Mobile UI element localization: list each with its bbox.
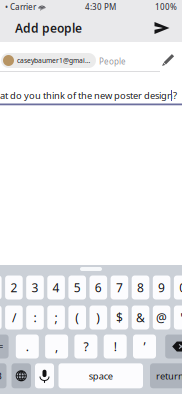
staticText: • Carrier xyxy=(5,2,36,12)
button[interactable]: . xyxy=(16,334,39,358)
button[interactable]: #+= xyxy=(0,334,9,358)
button[interactable]: Delete xyxy=(165,334,182,358)
staticText: 100% xyxy=(155,2,177,12)
button[interactable]: " xyxy=(174,305,182,329)
button[interactable]: ! xyxy=(104,334,127,358)
staticText: $ xyxy=(116,309,123,325)
button[interactable]: Send xyxy=(152,17,172,39)
staticText: return xyxy=(156,370,182,382)
button[interactable]: / xyxy=(5,305,23,329)
staticText: 7 xyxy=(116,279,123,295)
button[interactable]: ’ xyxy=(133,334,156,358)
button[interactable]: Next keyboard xyxy=(11,363,31,388)
staticText: 9 xyxy=(158,279,165,295)
staticText: ( xyxy=(75,309,79,325)
staticText: space xyxy=(89,370,113,382)
button[interactable]: 8 xyxy=(132,275,149,299)
staticText: 0 xyxy=(179,279,182,295)
button[interactable]: $ xyxy=(111,305,128,329)
staticText: caseybaumer1@gmai… xyxy=(17,56,90,65)
button[interactable]: @ xyxy=(153,305,170,329)
staticText: 4:30 PM xyxy=(85,2,116,12)
staticText: #+= xyxy=(0,340,3,353)
staticText: @ xyxy=(156,309,167,325)
staticText: 3 xyxy=(31,279,38,295)
button[interactable]: 6 xyxy=(89,275,107,299)
staticText: / xyxy=(12,309,16,325)
staticText: Add people xyxy=(15,20,82,36)
staticText: 123 xyxy=(0,370,1,382)
button[interactable]: , xyxy=(45,334,68,358)
staticText: 4 xyxy=(53,279,60,295)
staticText: ) xyxy=(96,309,100,325)
button[interactable]: ( xyxy=(68,305,86,329)
button[interactable]: 3 xyxy=(26,275,44,299)
button[interactable]: & xyxy=(132,305,149,329)
staticText: 2 xyxy=(10,279,17,295)
button[interactable]: 1 xyxy=(0,275,2,299)
staticText: ’ xyxy=(143,338,145,354)
staticText: . xyxy=(26,338,29,354)
staticText: 8 xyxy=(137,279,144,295)
button[interactable]: 5 xyxy=(68,275,86,299)
staticText: ; xyxy=(55,309,58,325)
button[interactable]: - xyxy=(0,305,2,329)
button[interactable]: Edit recipients xyxy=(159,51,177,69)
staticText: " xyxy=(180,309,182,325)
button[interactable]: return xyxy=(150,363,182,388)
staticText: 5 xyxy=(74,279,81,295)
button[interactable]: : xyxy=(26,305,44,329)
button[interactable]: 4 xyxy=(47,275,65,299)
button[interactable]: 0 xyxy=(174,275,182,299)
staticText: at do you think of the new poster design… xyxy=(0,89,177,102)
button[interactable]: ? xyxy=(74,334,97,358)
button[interactable]: 123 xyxy=(0,363,6,388)
button[interactable]: 2 xyxy=(5,275,23,299)
button[interactable]: 9 xyxy=(153,275,170,299)
button[interactable]: ; xyxy=(47,305,65,329)
staticText: ? xyxy=(83,338,88,354)
staticText: & xyxy=(136,309,145,325)
staticText: , xyxy=(55,338,58,354)
button[interactable]: Dictation xyxy=(35,363,54,388)
staticText: People xyxy=(99,56,126,67)
button[interactable]: space xyxy=(58,363,143,388)
staticText: ! xyxy=(114,338,117,354)
button[interactable]: 7 xyxy=(111,275,128,299)
staticText: : xyxy=(33,309,36,325)
button[interactable]: ) xyxy=(89,305,107,329)
staticText: 6 xyxy=(95,279,102,295)
